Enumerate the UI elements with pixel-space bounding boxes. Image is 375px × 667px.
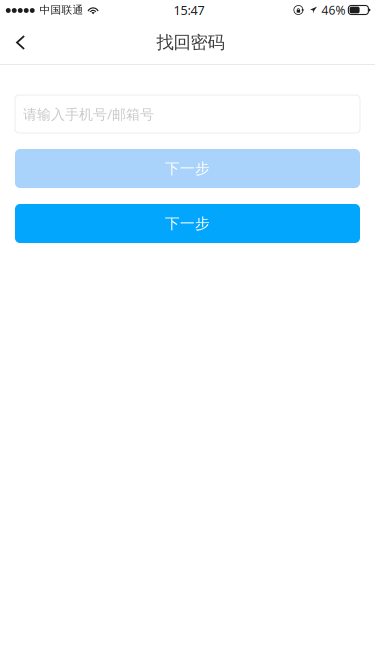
button[interactable]: 下一步	[15, 204, 360, 243]
staticText: 下一步	[165, 159, 210, 178]
staticText: 找回密码	[156, 32, 224, 53]
staticText: 46%	[321, 2, 345, 18]
staticText: 下一步	[165, 214, 210, 233]
staticText: 15:47	[173, 1, 204, 19]
staticText: 中国联通	[39, 3, 83, 17]
button[interactable]: Back	[0, 20, 44, 64]
button[interactable]: 请输入手机号/邮箱号	[15, 95, 360, 133]
staticText: 请输入手机号/邮箱号	[23, 104, 154, 124]
button[interactable]: 下一步	[15, 149, 360, 188]
